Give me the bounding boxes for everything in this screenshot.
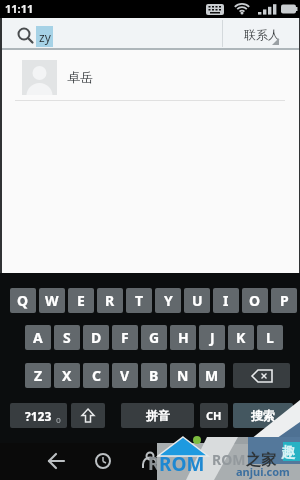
button[interactable]: Q <box>10 288 36 313</box>
button[interactable]: 联系人 <box>223 20 300 48</box>
staticText: O <box>249 291 261 310</box>
button[interactable] <box>42 447 70 475</box>
staticText: N <box>177 366 189 385</box>
button[interactable]: A <box>25 325 51 350</box>
staticText: X <box>62 366 72 385</box>
staticText: ROM <box>159 451 205 477</box>
staticText: 趣 <box>281 444 295 462</box>
staticText: Y <box>164 291 173 310</box>
staticText: Q <box>17 291 29 310</box>
button[interactable]: V <box>112 363 138 388</box>
button[interactable]: C <box>83 363 109 388</box>
staticText: M <box>205 366 219 385</box>
staticText: V <box>120 366 130 385</box>
staticText: 联系人 <box>244 27 280 42</box>
staticText: C <box>92 366 101 385</box>
button[interactable]: 拼音 <box>121 403 194 428</box>
button[interactable]: L <box>257 325 283 350</box>
button[interactable] <box>136 447 164 475</box>
staticText: P <box>280 291 289 310</box>
button[interactable]: P <box>271 288 297 313</box>
button[interactable] <box>71 403 105 428</box>
button[interactable]: J <box>199 325 225 350</box>
staticText: R <box>105 291 115 310</box>
button[interactable]: O <box>242 288 268 313</box>
staticText: B <box>149 366 159 385</box>
button[interactable]: X <box>54 363 80 388</box>
button[interactable]: 卓岳 <box>0 50 300 101</box>
staticText: K <box>236 328 246 347</box>
button[interactable]: U <box>184 288 210 313</box>
button[interactable]: G <box>141 325 167 350</box>
staticText: E <box>77 291 85 310</box>
button[interactable] <box>89 447 117 475</box>
button[interactable]: N <box>170 363 196 388</box>
staticText: D <box>91 328 102 347</box>
button[interactable]: H <box>170 325 196 350</box>
button[interactable]: ?123 <box>10 403 67 428</box>
staticText: o <box>56 414 61 425</box>
staticText: G <box>149 328 160 347</box>
button[interactable]: Y <box>155 288 181 313</box>
button[interactable]: D <box>83 325 109 350</box>
button[interactable]: 搜索 <box>233 403 293 428</box>
button[interactable] <box>233 363 290 388</box>
staticText: F <box>121 328 129 347</box>
staticText: W <box>45 291 59 310</box>
staticText: S <box>63 328 71 347</box>
button[interactable]: T <box>126 288 152 313</box>
staticText: 拼音 <box>146 408 170 423</box>
staticText: CH <box>206 408 222 423</box>
staticText: ROM <box>212 450 246 469</box>
staticText: 卓岳 <box>67 69 93 85</box>
staticText: H <box>178 328 189 347</box>
button[interactable]: I <box>213 288 239 313</box>
staticText: I <box>223 291 229 310</box>
staticText: R <box>148 451 160 476</box>
staticText: anjui.com <box>236 464 290 479</box>
button[interactable]: B <box>141 363 167 388</box>
staticText: 搜索 <box>251 408 275 423</box>
staticText: T <box>135 291 144 310</box>
staticText: A <box>33 328 43 347</box>
button[interactable]: E <box>68 288 94 313</box>
button[interactable]: K <box>228 325 254 350</box>
staticText: zy <box>39 29 51 45</box>
button[interactable]: Z <box>25 363 51 388</box>
staticText: ?123 <box>25 408 52 424</box>
button[interactable]: zy <box>0 18 300 50</box>
button[interactable]: S <box>54 325 80 350</box>
staticText: J <box>210 328 215 347</box>
button[interactable]: M <box>199 363 225 388</box>
button[interactable]: R <box>97 288 123 313</box>
staticText: U <box>192 291 203 310</box>
staticText: Z <box>34 366 43 385</box>
staticText: 之家 <box>246 451 276 470</box>
staticText: 11:11 <box>5 1 34 16</box>
staticText: L <box>266 328 274 347</box>
button[interactable]: F <box>112 325 138 350</box>
button[interactable]: W <box>39 288 65 313</box>
button[interactable]: CH <box>200 403 228 428</box>
